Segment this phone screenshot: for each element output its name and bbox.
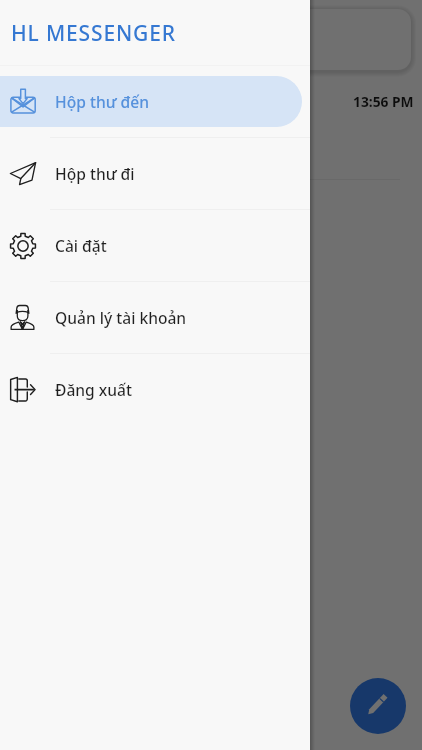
staticText: Cài đặt [55, 235, 107, 256]
button[interactable]: Hộp thư đến [0, 76, 302, 127]
staticText: Quản lý tài khoản [55, 307, 187, 328]
staticText: Đăng xuất [55, 379, 132, 400]
staticText: Hộp thư đến [55, 91, 150, 112]
button[interactable]: Hộp thư đi [0, 148, 302, 199]
button[interactable]: Đăng xuất [0, 364, 302, 415]
button[interactable]: Cài đặt [0, 220, 302, 271]
button[interactable]: Compose message [350, 678, 406, 734]
staticText: 13:56 PM [353, 92, 414, 111]
staticText: Hộp thư đi [55, 163, 135, 184]
button[interactable]: Close navigation drawer [0, 0, 422, 750]
button[interactable]: Quản lý tài khoản [0, 292, 302, 343]
staticText: HL MESSENGER [11, 19, 176, 48]
